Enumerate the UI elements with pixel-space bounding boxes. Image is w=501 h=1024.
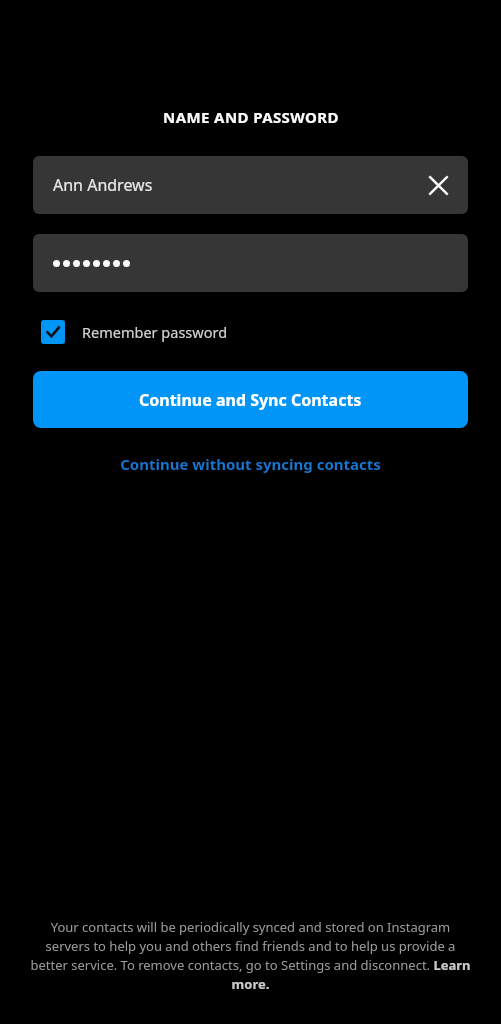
- button[interactable]: [33, 234, 468, 292]
- staticText: Remember password: [82, 322, 228, 342]
- button[interactable]: Remember password: [41, 320, 501, 344]
- staticText: Your contacts will be periodically synce…: [28, 918, 473, 993]
- button[interactable]: Continue without syncing contacts: [33, 444, 468, 484]
- staticText: Continue and Sync Contacts: [139, 389, 362, 411]
- staticText: NAME AND PASSWORD: [163, 107, 339, 127]
- button[interactable]: Continue and Sync Contacts: [33, 371, 468, 428]
- button[interactable]: Ann Andrews: [33, 156, 468, 214]
- button[interactable]: Your contacts will be periodically synce…: [28, 918, 473, 993]
- staticText: Continue without syncing contacts: [120, 454, 381, 474]
- button[interactable]: Clear name: [412, 159, 464, 211]
- staticText: Ann Andrews: [53, 174, 412, 196]
